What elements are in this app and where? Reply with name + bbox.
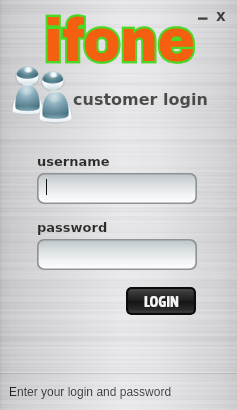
- staticText: x: [216, 7, 226, 24]
- button[interactable]: password: [37, 239, 197, 270]
- staticText: ifone: [44, 8, 195, 73]
- button[interactable]: LOGIN: [126, 287, 196, 315]
- staticText: Enter your login and password: [9, 385, 172, 398]
- staticText: ifone: [44, 8, 195, 73]
- staticText: username: [37, 154, 110, 169]
- staticText: customer login: [73, 90, 208, 109]
- button[interactable]: Close: [212, 5, 230, 23]
- staticText: password: [37, 220, 108, 235]
- staticText: LOGIN: [144, 293, 179, 310]
- button[interactable]: Minimize: [194, 5, 212, 21]
- button[interactable]: username: [37, 173, 197, 204]
